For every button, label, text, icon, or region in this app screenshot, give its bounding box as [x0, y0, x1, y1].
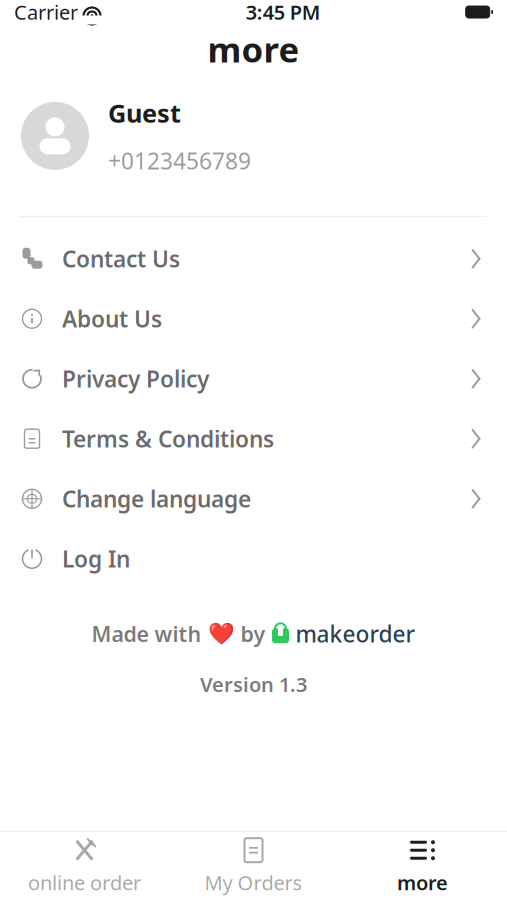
staticText: Log In: [62, 544, 130, 574]
staticText: online order: [28, 869, 141, 896]
button[interactable]: Contact Us: [0, 229, 507, 289]
button[interactable]: Change language: [0, 469, 507, 529]
staticText: Version 1.3: [200, 671, 307, 697]
staticText: more: [397, 869, 448, 896]
staticText: 3:45 PM: [246, 0, 321, 25]
staticText: Made with: [91, 620, 201, 648]
staticText: ❤️: [207, 622, 234, 646]
button[interactable]: Privacy Policy: [0, 349, 507, 409]
staticText: +0123456789: [108, 146, 251, 176]
button[interactable]: About Us: [0, 289, 507, 349]
staticText: My Orders: [204, 869, 302, 896]
staticText: Carrier: [14, 0, 78, 25]
staticText: Change language: [62, 484, 251, 514]
button[interactable]: online order: [0, 832, 169, 900]
staticText: Privacy Policy: [62, 364, 209, 394]
staticText: Terms & Conditions: [62, 424, 274, 454]
staticText: Contact Us: [62, 244, 180, 274]
staticText: more: [207, 26, 299, 72]
button[interactable]: My Orders: [169, 832, 338, 900]
staticText: Guest: [108, 96, 181, 130]
staticText: About Us: [62, 304, 162, 334]
button[interactable]: more: [338, 832, 507, 900]
button[interactable]: Log In: [0, 529, 507, 589]
staticText: by: [240, 620, 265, 648]
button[interactable]: Terms & Conditions: [0, 409, 507, 469]
staticText: makeorder: [295, 619, 415, 649]
